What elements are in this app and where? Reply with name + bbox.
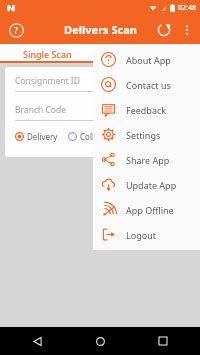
staticText: Share App (126, 154, 170, 166)
button[interactable]: Refresh (152, 18, 176, 42)
button[interactable]: Recent apps (152, 330, 174, 352)
button[interactable]: Home (89, 330, 111, 352)
button[interactable]: Share App (93, 147, 200, 172)
button[interactable]: Help (5, 19, 27, 41)
button[interactable]: Logout (93, 222, 200, 247)
button[interactable]: Single Scan (0, 44, 95, 63)
staticText: Contact us (126, 79, 171, 91)
staticText: Delivers Scan (64, 22, 137, 37)
button[interactable]: Collection (68, 131, 118, 142)
staticText: ? (14, 24, 18, 36)
staticText: Collection (80, 131, 118, 142)
staticText: Feedback (126, 104, 167, 116)
staticText: Consignment ID (15, 75, 80, 87)
staticText: About App (126, 54, 171, 66)
staticText: Single Scan (23, 48, 72, 60)
staticText: Branch Code (15, 104, 66, 116)
button[interactable]: Update App (93, 172, 200, 197)
button[interactable]: About App (93, 47, 200, 72)
staticText: App Offline (126, 204, 174, 216)
staticText: Delivery (27, 131, 58, 142)
button[interactable]: Delivery (15, 131, 58, 142)
button[interactable]: Back (26, 330, 48, 352)
button[interactable]: Settings (93, 122, 200, 147)
staticText: 02:48 (178, 3, 196, 13)
button[interactable]: Contact us (93, 72, 200, 97)
button[interactable]: Consignment ID (15, 75, 185, 92)
staticText: Logout (126, 229, 156, 241)
button[interactable]: Feedback (93, 97, 200, 122)
staticText: Update App (126, 179, 177, 191)
staticText: Settings (126, 129, 161, 141)
button[interactable]: Branch Code (15, 104, 185, 121)
button[interactable]: More options (176, 19, 198, 41)
button[interactable]: App Offline (93, 197, 200, 222)
